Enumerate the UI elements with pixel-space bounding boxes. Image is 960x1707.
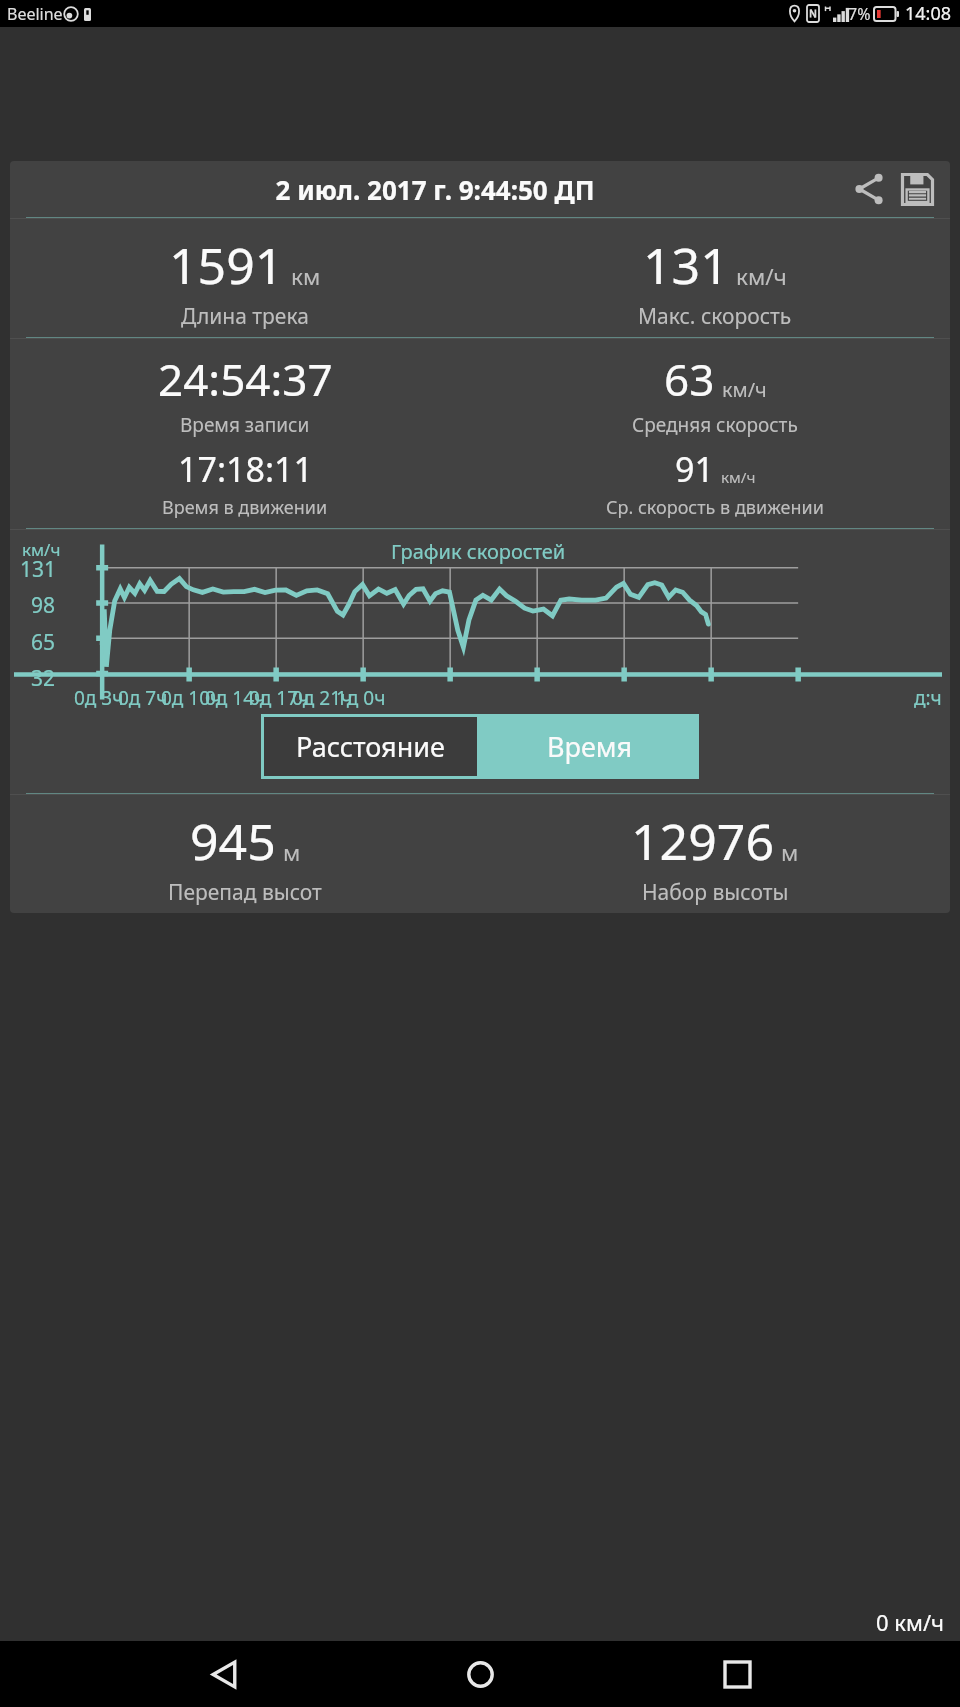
button[interactable]: Недавние <box>704 1641 770 1707</box>
staticText: 131 <box>20 555 57 584</box>
staticText: Средняя скорость <box>632 412 798 438</box>
staticText: 98 <box>31 591 56 620</box>
staticText: 7% <box>848 3 871 25</box>
staticText: 14:08 <box>905 1 952 26</box>
staticText: д:ч <box>914 685 942 711</box>
button[interactable]: Главный экран <box>447 1641 513 1707</box>
staticText: 131 <box>643 231 729 299</box>
staticText: 1591 <box>169 231 284 299</box>
staticText: м <box>283 837 301 868</box>
staticText: 24:54:37 <box>158 349 333 409</box>
button[interactable]: Поделиться <box>846 166 892 212</box>
button[interactable]: Сохранить <box>894 166 940 212</box>
button[interactable]: Время <box>480 714 699 779</box>
staticText: 0д 17ч <box>249 685 310 711</box>
staticText: 2 июл. 2017 г. 9:44:50 ДП <box>24 172 846 207</box>
staticText: Время записи <box>180 412 310 438</box>
staticText: Ср. скорость в движении <box>606 495 824 520</box>
staticText: 12976 <box>631 807 774 875</box>
staticText: 0 км/ч <box>876 1607 945 1637</box>
staticText: Перепад высот <box>168 878 322 907</box>
staticText: км/ч <box>721 467 756 488</box>
staticText: м <box>781 837 799 868</box>
staticText: км/ч <box>22 538 61 561</box>
staticText: Время в движении <box>162 495 328 520</box>
staticText: 945 <box>190 807 276 875</box>
staticText: Время <box>547 728 633 765</box>
staticText: км <box>291 261 321 292</box>
staticText: 0д 21ч <box>292 685 353 711</box>
staticText: 63 <box>664 349 715 409</box>
staticText: 1д 0ч <box>336 685 386 711</box>
staticText: Набор высоты <box>642 878 789 907</box>
staticText: Длина трека <box>181 302 309 331</box>
staticText: 0д 3ч <box>74 685 124 711</box>
staticText: График скоростей <box>391 538 566 565</box>
staticText: Макс. скорость <box>638 302 792 331</box>
staticText: Расстояние <box>296 728 445 765</box>
staticText: 0д 7ч <box>118 685 168 711</box>
staticText: 91 <box>675 446 714 492</box>
staticText: км/ч <box>736 261 787 292</box>
staticText: км/ч <box>722 376 767 403</box>
staticText: 17:18:11 <box>178 446 313 492</box>
staticText: 32 <box>31 664 56 693</box>
staticText: 0д 14ч <box>205 685 266 711</box>
staticText: Beeline <box>7 3 63 25</box>
staticText: 0д 10ч <box>161 685 222 711</box>
button[interactable]: Назад <box>191 1641 257 1707</box>
staticText: 65 <box>31 628 56 657</box>
button[interactable]: Расстояние <box>264 717 477 776</box>
